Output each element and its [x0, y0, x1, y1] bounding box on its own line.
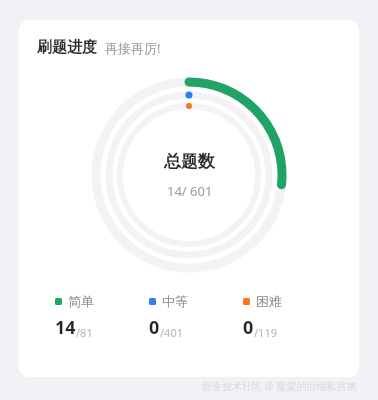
staticText: 中等	[162, 293, 188, 309]
staticText: 困难	[256, 293, 282, 309]
staticText: 再接再厉!	[105, 39, 161, 57]
staticText: /401	[160, 325, 183, 340]
button[interactable]: 简单	[55, 293, 149, 340]
staticText: /119	[254, 325, 277, 340]
staticText: 0	[149, 315, 160, 340]
button[interactable]: 刷题进度	[37, 38, 161, 57]
button[interactable]: 中等	[149, 293, 243, 340]
staticText: 简单	[68, 293, 94, 309]
staticText: 14/ 601	[167, 182, 213, 200]
staticText: 14	[55, 315, 76, 340]
staticText: 总题数	[164, 151, 215, 172]
button[interactable]: 困难	[243, 293, 337, 340]
staticText: /81	[76, 325, 93, 340]
staticText: 刷题进度	[37, 38, 97, 57]
button[interactable]: 刷题进度	[19, 20, 359, 377]
staticText: 掘金技术社区 @ 粟粟的后端私房菜	[202, 379, 357, 393]
staticText: 0	[243, 315, 254, 340]
